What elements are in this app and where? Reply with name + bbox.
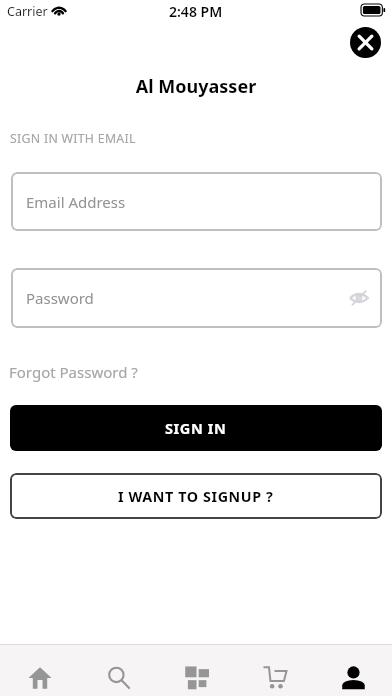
staticText: Al Mouyasser	[0, 74, 392, 99]
button[interactable]: Profile	[314, 645, 392, 696]
staticText: I WANT TO SIGNUP ?	[118, 487, 274, 506]
button[interactable]: SIGN IN	[10, 405, 382, 451]
staticText: 2:48 PM	[169, 2, 223, 21]
staticText: Email Address	[26, 192, 126, 212]
button[interactable]: Close	[350, 27, 381, 58]
staticText: Password	[26, 288, 94, 308]
staticText: Carrier	[7, 3, 48, 20]
button[interactable]: Show password	[349, 288, 369, 308]
button[interactable]: I WANT TO SIGNUP ?	[10, 473, 382, 519]
staticText: SIGN IN	[165, 418, 227, 438]
button[interactable]: Password	[11, 268, 382, 328]
staticText: SIGN IN WITH EMAIL	[10, 130, 136, 147]
button[interactable]: Home	[0, 645, 79, 696]
button[interactable]: Forgot Password ?	[9, 360, 138, 384]
button[interactable]: Categories	[158, 645, 236, 696]
button[interactable]: Email Address	[11, 172, 382, 231]
button[interactable]: Cart	[236, 645, 314, 696]
button[interactable]: Search	[79, 645, 158, 696]
